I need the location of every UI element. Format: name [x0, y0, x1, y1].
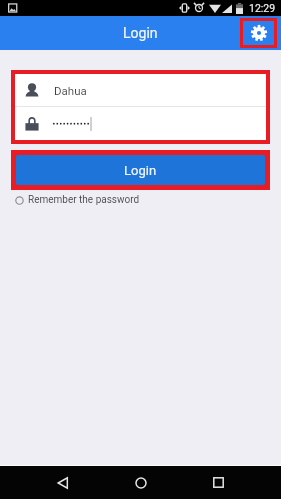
button[interactable] [15, 107, 266, 140]
staticText: Dahua [54, 84, 87, 97]
button[interactable]: Settings [243, 21, 274, 45]
button[interactable]: Dahua [15, 74, 266, 106]
button[interactable]: Login [16, 155, 265, 185]
staticText: 12:29 [249, 2, 276, 14]
staticText: Remember the password [28, 194, 140, 206]
button[interactable]: Recents [198, 466, 238, 499]
button[interactable]: Remember the password [15, 194, 140, 206]
button[interactable]: Back [43, 466, 83, 499]
button[interactable]: Home [121, 466, 161, 499]
staticText: Login [123, 25, 158, 41]
staticText: Login [124, 163, 157, 178]
